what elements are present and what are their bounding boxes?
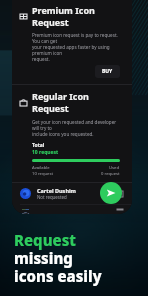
- button[interactable]: Cartel Dushim: [12, 183, 132, 204]
- staticText: Cartel Dushim: [37, 187, 76, 194]
- button[interactable]: Send request: [100, 182, 122, 204]
- button[interactable]: Select Cartel Dushim: [117, 191, 123, 197]
- staticText: BUY: [102, 68, 113, 75]
- button[interactable]: BUY: [95, 65, 120, 78]
- staticText: Used: [109, 165, 120, 171]
- staticText: Premium icon request is pay to request. …: [32, 32, 124, 62]
- staticText: 0 request: [101, 171, 120, 177]
- button[interactable]: Figma Mirror: [12, 205, 132, 214]
- staticText: Regular Icon Request: [32, 90, 124, 114]
- staticText: 10 request: [32, 149, 59, 156]
- staticText: Request missing icons easily: [14, 230, 134, 287]
- staticText: Total: [32, 142, 45, 149]
- staticText: 10 request: [32, 171, 53, 177]
- staticText: Not requested: [37, 194, 67, 200]
- staticText: Get your icon requested and developer wi…: [32, 119, 120, 137]
- staticText: Premium Icon Request: [32, 4, 124, 28]
- staticText: Available: [32, 165, 50, 171]
